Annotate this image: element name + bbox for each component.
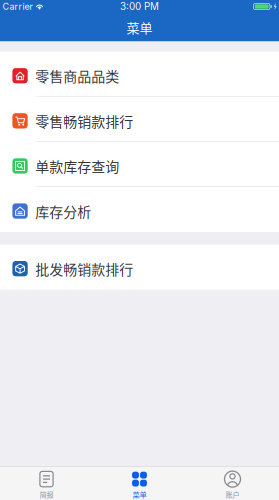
button[interactable]: 账户 [186,467,279,500]
button[interactable]: 批发畅销款排行 [0,245,279,290]
staticText: 单款库存查询 [35,156,119,176]
staticText: 3:00 PM [120,0,159,12]
staticText: 账户 [225,489,239,500]
button[interactable]: 零售畅销款排行 [0,97,279,142]
button[interactable]: 零售商品品类 [0,52,279,97]
button[interactable]: 简报 [0,467,93,500]
staticText: 菜单 [132,489,146,500]
button[interactable]: 单款库存查询 [0,142,279,187]
staticText: 库存分析 [35,201,91,221]
button[interactable]: 库存分析 [0,187,279,232]
staticText: 批发畅销款排行 [35,258,133,279]
staticText: 简报 [39,489,53,500]
staticText: 零售商品品类 [35,66,119,86]
staticText: Carrier [3,1,33,12]
staticText: 零售畅销款排行 [35,111,133,131]
staticText: 菜单 [126,18,152,37]
button[interactable]: 菜单 [93,467,186,500]
